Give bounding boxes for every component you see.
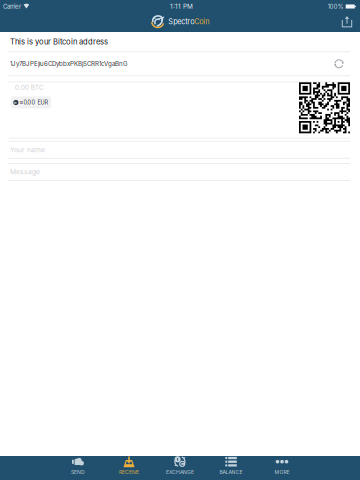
staticText: SEND <box>71 469 85 475</box>
button[interactable]: BALANCE <box>205 456 256 480</box>
staticText: MORE <box>274 469 289 475</box>
button[interactable]: Share <box>334 12 360 31</box>
staticText: RECEIVE <box>119 469 139 475</box>
staticText: Message <box>10 168 40 176</box>
staticText: This is your Bitcoin address <box>10 37 108 46</box>
button[interactable]: EXCHANGE <box>154 456 205 480</box>
button[interactable]: SEND <box>52 456 103 480</box>
staticText: 100% <box>328 3 344 10</box>
staticText: Spectro <box>168 17 194 26</box>
staticText: BALANCE <box>219 469 242 475</box>
button[interactable]: Refresh address <box>328 53 350 75</box>
staticText: EXCHANGE <box>166 469 194 475</box>
staticText: 0.00 BTC <box>15 83 44 91</box>
staticText: Carrier <box>3 3 21 10</box>
button[interactable]: MORE <box>256 456 307 480</box>
staticText: Coin <box>194 17 209 26</box>
staticText: 1Jy7BJPEjiu6CDybbxPKBjSCRR1cVgaBnG <box>10 60 128 67</box>
button[interactable]: RECEIVE <box>103 456 154 480</box>
staticText: ≈0.00 EUR <box>19 99 48 106</box>
staticText: Your name <box>10 146 45 154</box>
staticText: 1:11 PM <box>170 3 193 10</box>
